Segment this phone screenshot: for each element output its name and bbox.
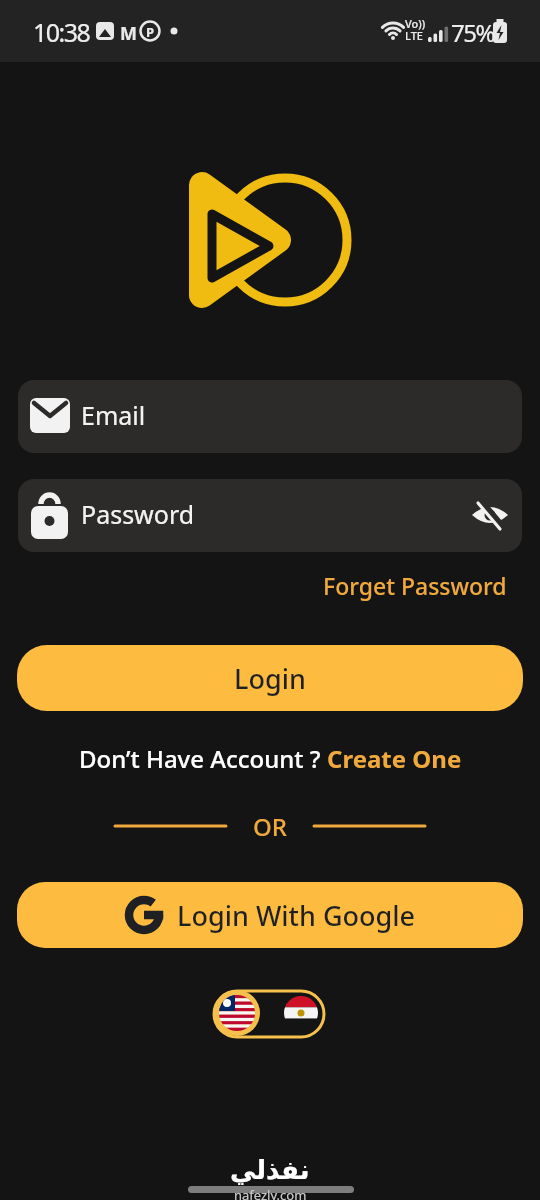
staticText: nafezly.com xyxy=(234,1186,307,1200)
button[interactable]: Forget Password xyxy=(323,570,507,601)
staticText: Email xyxy=(81,398,146,432)
button[interactable]: Login xyxy=(17,645,523,711)
button[interactable]: Don’t Have Account ? xyxy=(0,742,540,774)
button[interactable]: Password xyxy=(18,479,522,552)
staticText: Vo)) xyxy=(405,16,426,31)
staticText: Forget Password xyxy=(323,570,507,601)
staticText: LTE xyxy=(405,28,423,43)
staticText: Login With Google xyxy=(177,897,416,934)
staticText: 75% xyxy=(451,16,494,49)
button[interactable]: Email xyxy=(18,380,522,453)
staticText: Don’t Have Account ? xyxy=(79,742,327,774)
staticText: M xyxy=(120,21,137,46)
button[interactable]: Login With Google xyxy=(17,882,523,948)
staticText: 10:38 xyxy=(33,15,90,49)
staticText: Password xyxy=(81,497,195,531)
staticText: Login xyxy=(234,660,306,697)
button[interactable] xyxy=(212,987,328,1039)
staticText: Create One xyxy=(327,742,462,774)
staticText: نفذلي xyxy=(230,1155,310,1185)
staticText: OR xyxy=(253,810,287,842)
staticText: P xyxy=(146,23,155,41)
